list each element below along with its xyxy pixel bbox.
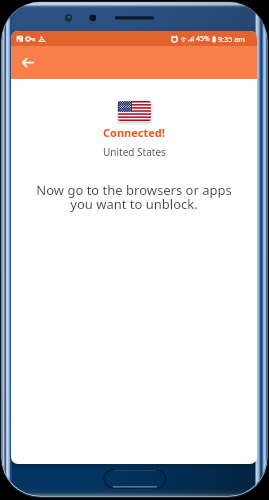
staticText: 45% (196, 34, 210, 44)
staticText: 9:35 am (218, 34, 245, 44)
staticText: Now go to the browsers or apps you want … (36, 181, 232, 213)
staticText: United States (103, 145, 166, 159)
staticText: Connected! (103, 125, 165, 140)
button[interactable]: Back (17, 52, 39, 74)
